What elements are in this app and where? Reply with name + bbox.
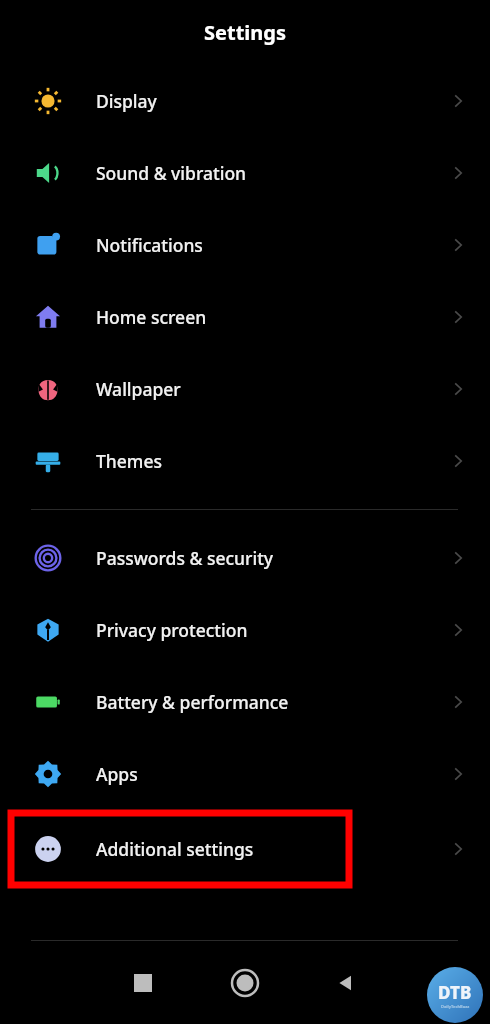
button[interactable]: Wallpaper (0, 353, 490, 425)
button[interactable]: Sound & vibration (0, 137, 490, 209)
staticText: Wallpaper (96, 377, 181, 401)
staticText: Themes (96, 449, 162, 473)
button[interactable]: Apps (0, 738, 490, 810)
button[interactable]: Back (325, 963, 365, 1003)
staticText: Additional settings (96, 837, 254, 861)
staticText: Apps (96, 762, 138, 786)
button[interactable]: Home (223, 961, 267, 1005)
button[interactable]: Display (0, 65, 490, 137)
staticText: Display (96, 89, 157, 113)
button[interactable]: Home screen (0, 281, 490, 353)
button[interactable]: Battery & performance (0, 666, 490, 738)
button[interactable]: Recent apps (123, 963, 163, 1003)
staticText: Settings (204, 19, 286, 46)
staticText: Privacy protection (96, 618, 248, 642)
button[interactable]: Notifications (0, 209, 490, 281)
button[interactable]: Privacy protection (0, 594, 490, 666)
staticText: DTB (438, 981, 472, 1004)
staticText: Home screen (96, 305, 207, 329)
staticText: Sound & vibration (96, 161, 247, 185)
staticText: DailyTechBuzz (441, 1004, 470, 1009)
staticText: Battery & performance (96, 690, 289, 714)
button[interactable]: Passwords & security (0, 522, 490, 594)
staticText: Notifications (96, 233, 203, 257)
button[interactable]: Themes (0, 425, 490, 497)
button[interactable]: Additional settings (0, 810, 490, 888)
staticText: Passwords & security (96, 546, 274, 570)
